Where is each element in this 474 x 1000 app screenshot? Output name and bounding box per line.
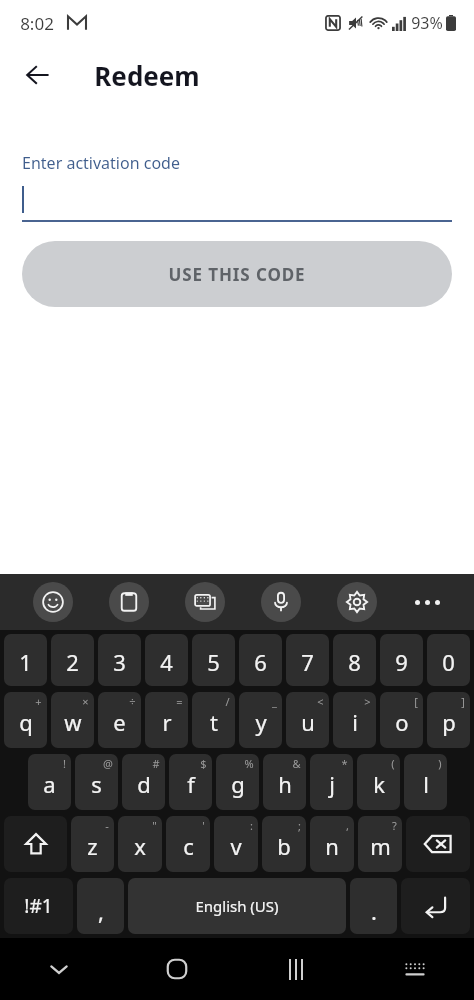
staticText: v [230, 831, 242, 861]
button[interactable]: 1 [4, 634, 47, 686]
button[interactable]: h [263, 754, 306, 810]
staticText: * [341, 756, 348, 771]
staticText: × [82, 694, 89, 709]
button[interactable]: 4 [145, 634, 188, 686]
button[interactable]: USE THIS CODE [22, 241, 452, 307]
button[interactable]: !#1 [4, 878, 73, 934]
button[interactable]: Back [14, 51, 62, 99]
staticText: 7 [301, 647, 314, 677]
staticText: > [364, 694, 371, 709]
button[interactable]: Emoji [33, 582, 73, 622]
button[interactable]: 2 [51, 634, 94, 686]
button[interactable]: o [380, 692, 423, 748]
button[interactable]: b [262, 816, 306, 872]
button[interactable]: e [98, 692, 141, 748]
button[interactable]: i [333, 692, 376, 748]
button[interactable] [22, 182, 452, 222]
button[interactable]: English (US) [128, 878, 346, 934]
staticText: e [113, 707, 126, 737]
button[interactable]: Home [118, 938, 236, 1000]
staticText: $ [200, 756, 207, 771]
button[interactable]: j [310, 754, 353, 810]
staticText: t [210, 707, 218, 737]
staticText: USE THIS CODE [168, 263, 306, 286]
staticText: ' [202, 818, 205, 833]
button[interactable]: q [4, 692, 47, 748]
staticText: 9 [395, 647, 408, 677]
button[interactable]: More options [395, 574, 460, 630]
staticText: Enter activation code [22, 152, 180, 174]
staticText: < [317, 694, 324, 709]
button[interactable]: Recents [236, 938, 355, 1000]
staticText: j [329, 769, 335, 799]
staticText: ; [298, 818, 301, 833]
button[interactable]: k [357, 754, 400, 810]
button[interactable]: 6 [239, 634, 282, 686]
button[interactable]: f [169, 754, 212, 810]
staticText: Redeem [94, 58, 200, 93]
staticText: l [423, 769, 429, 799]
button[interactable]: l [404, 754, 447, 810]
staticText: & [292, 756, 301, 771]
button[interactable]: 5 [192, 634, 235, 686]
button[interactable]: s [75, 754, 118, 810]
button[interactable]: 8 [333, 634, 376, 686]
staticText: b [277, 831, 291, 861]
staticText: x [134, 831, 146, 861]
button[interactable]: Keyboard options [355, 938, 474, 1000]
staticText: " [152, 818, 157, 833]
staticText: y [255, 707, 267, 737]
staticText: w [64, 707, 82, 737]
staticText: _ [272, 694, 277, 709]
staticText: a [43, 769, 56, 799]
button[interactable]: w [51, 692, 94, 748]
button[interactable]: Clipboard [109, 582, 149, 622]
staticText: ] [461, 694, 465, 709]
button[interactable]: u [286, 692, 329, 748]
button[interactable]: 0 [427, 634, 470, 686]
button[interactable]: Settings [337, 582, 377, 622]
staticText: - [105, 818, 109, 833]
staticText: 2 [66, 647, 79, 677]
button[interactable]: Shift [4, 816, 67, 872]
button[interactable]: Backspace [406, 816, 470, 872]
button[interactable]: d [122, 754, 165, 810]
staticText: ( [391, 756, 395, 771]
staticText: % [244, 756, 254, 771]
button[interactable]: , [77, 878, 124, 934]
staticText: : [250, 818, 253, 833]
staticText: [ [414, 694, 418, 709]
button[interactable]: m [358, 816, 402, 872]
button[interactable]: y [239, 692, 282, 748]
button[interactable]: Enter [401, 878, 470, 934]
button[interactable]: . [350, 878, 397, 934]
button[interactable]: t [192, 692, 235, 748]
button[interactable]: 3 [98, 634, 141, 686]
button[interactable]: x [118, 816, 162, 872]
staticText: g [231, 769, 245, 799]
button[interactable]: 9 [380, 634, 423, 686]
staticText: o [395, 707, 409, 737]
staticText: i [352, 707, 358, 737]
button[interactable]: z [71, 816, 114, 872]
staticText: / [225, 694, 230, 709]
button[interactable]: v [214, 816, 258, 872]
button[interactable]: Switch keyboard [185, 582, 225, 622]
button[interactable]: Hide keyboard [0, 938, 118, 1000]
staticText: # [152, 756, 160, 771]
staticText: ) [438, 756, 442, 771]
button[interactable]: a [28, 754, 71, 810]
staticText: d [137, 769, 151, 799]
button[interactable]: n [310, 816, 354, 872]
button[interactable]: p [427, 692, 470, 748]
staticText: f [187, 769, 195, 799]
staticText: p [442, 707, 456, 737]
button[interactable]: 7 [286, 634, 329, 686]
staticText: + [35, 694, 42, 709]
staticText: 93% [411, 12, 443, 34]
staticText: c [183, 831, 194, 861]
button[interactable]: c [166, 816, 210, 872]
button[interactable]: Voice input [261, 582, 301, 622]
button[interactable]: r [145, 692, 188, 748]
button[interactable]: g [216, 754, 259, 810]
